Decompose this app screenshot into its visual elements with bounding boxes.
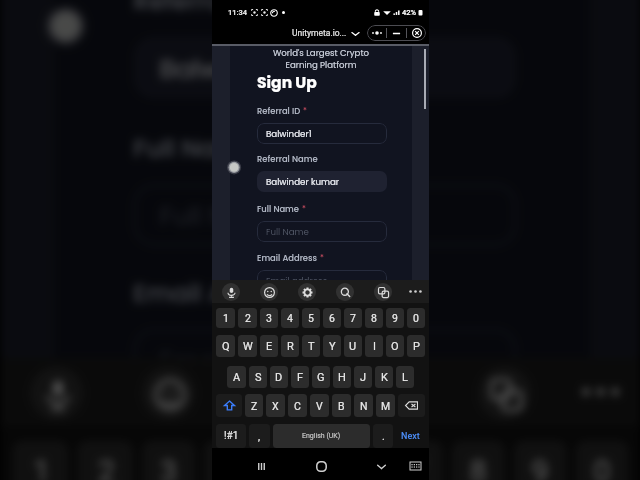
button[interactable]: M bbox=[376, 394, 395, 417]
staticText: !#1 bbox=[224, 430, 239, 442]
button[interactable]: !#1 bbox=[216, 424, 246, 448]
staticText: 0 bbox=[593, 452, 611, 480]
staticText: 9 bbox=[392, 312, 398, 324]
button[interactable]: Minimize bbox=[387, 25, 406, 41]
button[interactable]: 5 bbox=[266, 440, 319, 480]
button[interactable]: English (UK) bbox=[273, 424, 370, 448]
button[interactable]: P bbox=[407, 335, 425, 357]
button[interactable]: U bbox=[344, 335, 362, 357]
button[interactable]: 1 bbox=[12, 440, 68, 480]
button[interactable]: 8 bbox=[365, 308, 383, 328]
staticText: V bbox=[316, 400, 323, 412]
button[interactable]: B bbox=[332, 394, 351, 417]
staticText: World's Largest Crypto Earning Platform bbox=[230, 47, 412, 71]
staticText: 7 bbox=[407, 452, 425, 480]
button[interactable]: 7 bbox=[390, 440, 443, 480]
button[interactable]: Full Name bbox=[133, 184, 517, 246]
button[interactable]: Search bbox=[366, 367, 419, 420]
button[interactable]: Emoji bbox=[260, 283, 278, 301]
button[interactable]: Full Name bbox=[257, 221, 387, 242]
button[interactable]: Y bbox=[323, 335, 341, 357]
staticText: 2 bbox=[98, 452, 116, 480]
button[interactable]: V bbox=[310, 394, 329, 417]
staticText: 6 bbox=[329, 312, 335, 324]
button[interactable]: Translate bbox=[478, 367, 531, 420]
button[interactable]: G bbox=[312, 366, 330, 388]
button[interactable]: 7 bbox=[344, 308, 362, 328]
button[interactable]: O bbox=[386, 335, 404, 357]
staticText: Email address bbox=[160, 343, 343, 379]
button[interactable]: Shift bbox=[216, 394, 242, 417]
staticText: 3 bbox=[266, 312, 272, 324]
button[interactable]: Balwinder kumar bbox=[133, 36, 517, 98]
button[interactable]: 0 bbox=[407, 308, 425, 328]
button[interactable]: 5 bbox=[302, 308, 320, 328]
button[interactable]: Backspace bbox=[398, 394, 425, 417]
button[interactable]: 2 bbox=[238, 308, 257, 328]
button[interactable]: X bbox=[266, 394, 285, 417]
button[interactable]: A bbox=[227, 366, 246, 388]
button[interactable]: 4 bbox=[204, 440, 257, 480]
button[interactable]: Close bbox=[407, 25, 426, 41]
staticText: Z bbox=[251, 400, 258, 412]
button[interactable]: I bbox=[365, 335, 383, 357]
button[interactable]: Email address bbox=[133, 328, 517, 390]
button[interactable]: C bbox=[288, 394, 307, 417]
staticText: 1 bbox=[223, 312, 229, 324]
button[interactable]: 2 bbox=[77, 440, 133, 480]
button[interactable]: . bbox=[373, 424, 393, 448]
button[interactable]: Unitymeta.io... bbox=[292, 28, 360, 38]
button[interactable]: S bbox=[249, 366, 267, 388]
staticText: Balwinder kumar bbox=[266, 176, 340, 188]
button[interactable]: 9 bbox=[514, 440, 567, 480]
staticText: Next bbox=[401, 431, 420, 442]
button[interactable]: More bbox=[576, 367, 626, 417]
button[interactable]: 3 bbox=[260, 308, 278, 328]
button[interactable]: Balwinder kumar bbox=[257, 171, 387, 192]
button[interactable]: More bbox=[407, 283, 424, 300]
button[interactable]: 4 bbox=[281, 308, 299, 328]
button[interactable]: Next bbox=[396, 424, 425, 448]
button[interactable]: , bbox=[249, 424, 270, 448]
button[interactable]: Keyboard settings bbox=[298, 283, 316, 301]
button[interactable]: W bbox=[238, 335, 257, 357]
button[interactable]: Recents bbox=[249, 454, 273, 478]
button[interactable]: 8 bbox=[452, 440, 505, 480]
button[interactable]: N bbox=[354, 394, 373, 417]
button[interactable]: 6 bbox=[328, 440, 381, 480]
button[interactable]: 9 bbox=[386, 308, 404, 328]
button[interactable]: 3 bbox=[142, 440, 195, 480]
button[interactable]: 6 bbox=[323, 308, 341, 328]
staticText: Email Address bbox=[133, 275, 313, 311]
button[interactable]: D bbox=[270, 366, 288, 388]
staticText: 7 bbox=[350, 312, 356, 324]
button[interactable]: More options bbox=[367, 25, 386, 41]
staticText: E bbox=[266, 340, 273, 353]
button[interactable]: Voice input bbox=[222, 283, 240, 301]
button[interactable]: E bbox=[260, 335, 278, 357]
button[interactable]: Translate bbox=[374, 283, 392, 301]
button[interactable]: F bbox=[291, 366, 309, 388]
button[interactable]: Voice input bbox=[30, 367, 83, 420]
button[interactable]: Keyboard settings bbox=[254, 367, 307, 420]
staticText: 42% bbox=[402, 8, 417, 17]
button[interactable]: T bbox=[302, 335, 320, 357]
button[interactable]: Search bbox=[336, 283, 354, 301]
button[interactable]: Emoji bbox=[142, 367, 195, 420]
button[interactable]: 1 bbox=[216, 308, 235, 328]
button[interactable]: Email address bbox=[257, 270, 387, 291]
button[interactable]: Q bbox=[216, 335, 235, 357]
button[interactable]: H bbox=[333, 366, 351, 388]
button[interactable]: Balwinder1 bbox=[257, 123, 387, 144]
button[interactable]: J bbox=[354, 366, 372, 388]
button[interactable]: Hide keyboard bbox=[369, 454, 393, 478]
staticText: W bbox=[243, 340, 253, 353]
button[interactable]: L bbox=[396, 366, 414, 388]
button[interactable]: 0 bbox=[576, 440, 629, 480]
button[interactable]: Z bbox=[245, 394, 263, 417]
button[interactable]: R bbox=[281, 335, 299, 357]
button[interactable]: Home bbox=[309, 454, 333, 478]
button[interactable]: K bbox=[375, 366, 393, 388]
button[interactable]: Keyboard bbox=[403, 454, 427, 478]
